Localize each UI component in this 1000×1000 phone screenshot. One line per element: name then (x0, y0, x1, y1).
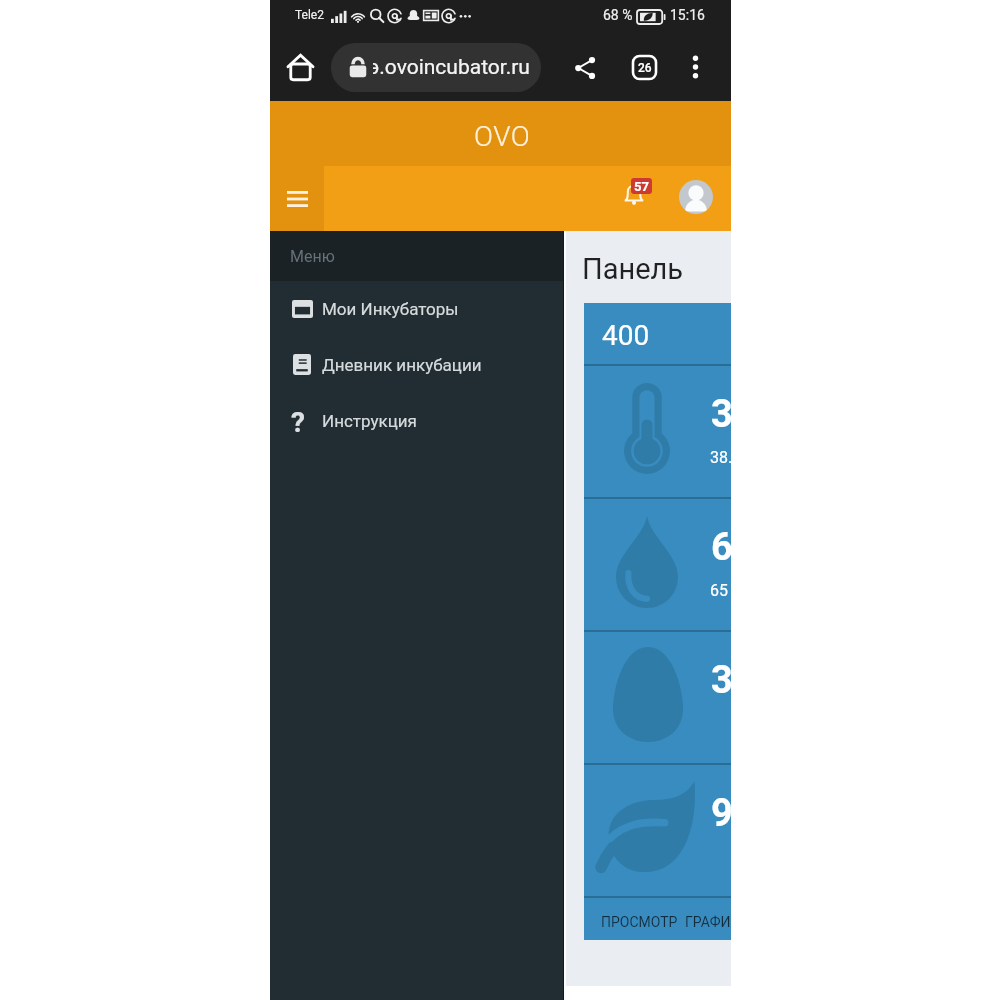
button[interactable]: ГРАФИК (685, 908, 731, 936)
staticText: э.ovoincubator.ru (373, 55, 530, 80)
staticText: 26 (638, 61, 652, 75)
staticText: 68 % (603, 7, 633, 23)
staticText: Меню (290, 247, 335, 266)
staticText: 400 (602, 319, 650, 352)
staticText: 95 (711, 791, 731, 836)
staticText: ПРОСМОТР (601, 914, 678, 930)
staticText: 65.5 (711, 525, 731, 570)
staticText: Панель (582, 252, 684, 286)
button[interactable]: ? (270, 393, 564, 449)
button[interactable]: Account (679, 180, 713, 214)
staticText: ГРАФИК (685, 914, 731, 930)
staticText: 38.0 / 36.0 (710, 448, 731, 467)
button[interactable]: Мои Инкубаторы (270, 281, 564, 337)
button[interactable]: Share (562, 45, 608, 91)
staticText: 65 / 45 (710, 581, 731, 600)
staticText: 57 (634, 179, 649, 194)
staticText: OVO (474, 120, 531, 153)
button[interactable]: Notifications (617, 172, 661, 220)
staticText: 37.8 (711, 392, 731, 437)
button[interactable]: э.ovoincubator.ru (331, 43, 541, 92)
button[interactable]: Tabs (621, 44, 667, 90)
button[interactable]: More options (672, 44, 718, 90)
button[interactable]: Menu (270, 166, 324, 231)
staticText: Tele2 (295, 8, 324, 22)
button[interactable]: Home (277, 44, 323, 90)
button[interactable]: Дневник инкубации (270, 337, 564, 393)
staticText: 15:16 (670, 7, 705, 23)
staticText: ? (291, 406, 305, 439)
button[interactable]: ПРОСМОТР (601, 908, 678, 936)
staticText: Мои Инкубаторы (322, 299, 459, 319)
staticText: Инструкция (322, 411, 417, 431)
staticText: 37 (711, 658, 731, 703)
staticText: Дневник инкубации (322, 355, 482, 375)
